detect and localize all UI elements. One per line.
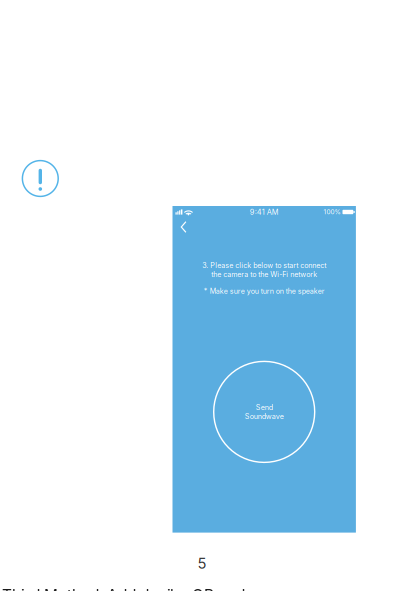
staticText: 5: [197, 554, 206, 572]
button[interactable]: Back: [175, 218, 191, 236]
button[interactable]: Send: [214, 361, 315, 462]
staticText: 9:41 AM: [250, 207, 279, 216]
staticText: 3. Please click below to start connect: [202, 261, 326, 270]
staticText: Send: [256, 403, 273, 412]
staticText: by QR code: [170, 586, 254, 591]
staticText: Third Method: Add device: [2, 586, 189, 591]
staticText: the camera to the Wi-Fi network: [211, 270, 317, 279]
staticText: * Make sure you turn on the speaker: [204, 287, 325, 295]
staticText: Soundwave: [245, 412, 284, 421]
staticText: 100%: [324, 208, 341, 216]
